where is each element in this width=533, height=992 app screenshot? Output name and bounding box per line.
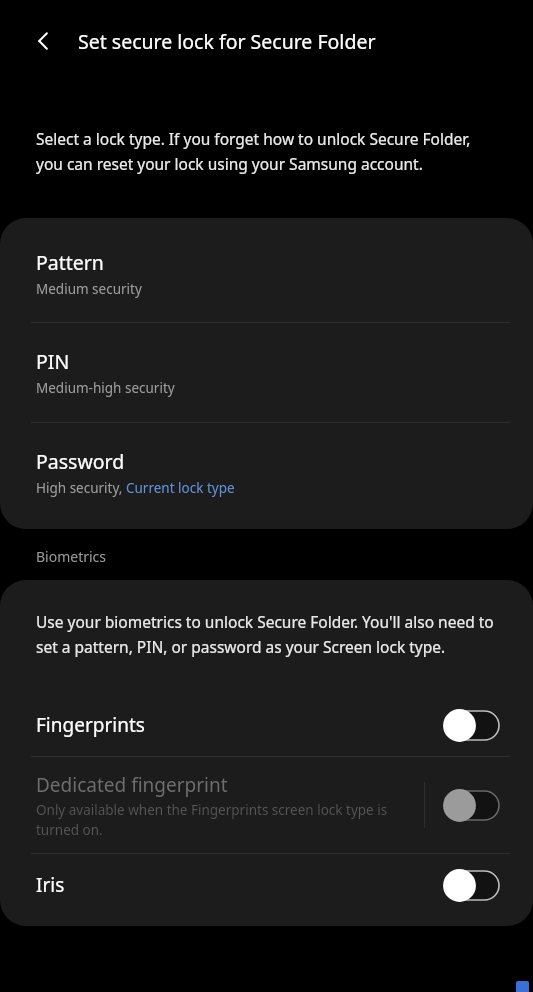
staticText: Set secure lock for Secure Folder: [78, 28, 376, 55]
button[interactable]: Iris: [0, 854, 533, 916]
button[interactable]: Password: [0, 423, 533, 529]
staticText: Dedicated fingerprint: [36, 772, 228, 798]
staticText: Fingerprints: [36, 712, 145, 738]
staticText: Pattern: [36, 249, 104, 276]
button[interactable]: Dedicated fingerprint: [0, 757, 533, 853]
button[interactable]: Pattern: [0, 218, 533, 322]
button[interactable]: Fingerprints: [0, 694, 533, 756]
staticText: Biometrics: [36, 547, 107, 566]
staticText: Select a lock type. If you forget how to…: [36, 128, 485, 175]
staticText: High security, Current lock type: [36, 479, 235, 497]
staticText: Password: [36, 448, 125, 475]
staticText: Medium-high security: [36, 379, 175, 397]
staticText: Only available when the Fingerprints scr…: [36, 801, 412, 839]
button[interactable]: PIN: [0, 323, 533, 422]
staticText: Use your biometrics to unlock Secure Fol…: [36, 611, 497, 658]
button[interactable]: Navigate up: [22, 19, 66, 63]
button[interactable]: Fingerprints switch, off: [444, 705, 500, 745]
button[interactable]: Dedicated fingerprint switch, off: [444, 785, 500, 825]
staticText: Iris: [36, 872, 65, 898]
button[interactable]: Iris switch, off: [444, 865, 500, 905]
staticText: PIN: [36, 348, 70, 375]
staticText: Medium security: [36, 280, 142, 298]
button[interactable]: Indicator: [516, 981, 529, 992]
